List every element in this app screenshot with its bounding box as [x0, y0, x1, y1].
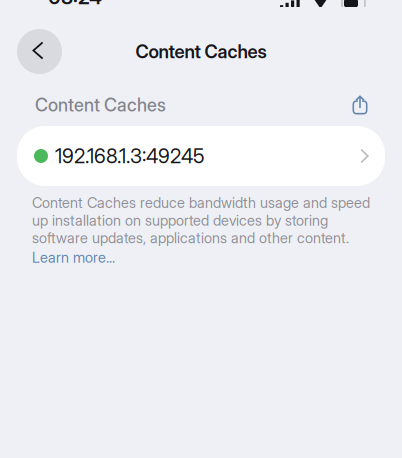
- staticText: Content Caches reduce bandwidth usage an…: [32, 194, 370, 247]
- button[interactable]: Learn more...: [32, 249, 115, 266]
- staticText: 192.168.1.3:49245: [55, 144, 205, 168]
- staticText: Content Caches: [135, 40, 266, 62]
- button[interactable]: 192.168.1.3:49245: [17, 126, 385, 186]
- staticText: Learn more...: [32, 249, 115, 266]
- button[interactable]: Back: [17, 29, 62, 74]
- staticText: Content Caches: [35, 94, 166, 116]
- button[interactable]: Share: [344, 90, 376, 120]
- staticText: 08:24: [48, 0, 102, 9]
